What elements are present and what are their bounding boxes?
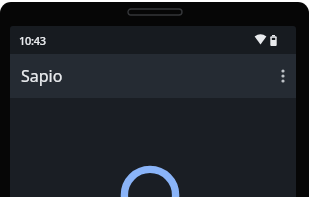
- staticText: 10:43: [19, 33, 46, 48]
- button[interactable]: [271, 64, 295, 88]
- staticText: Sapio: [21, 65, 63, 87]
